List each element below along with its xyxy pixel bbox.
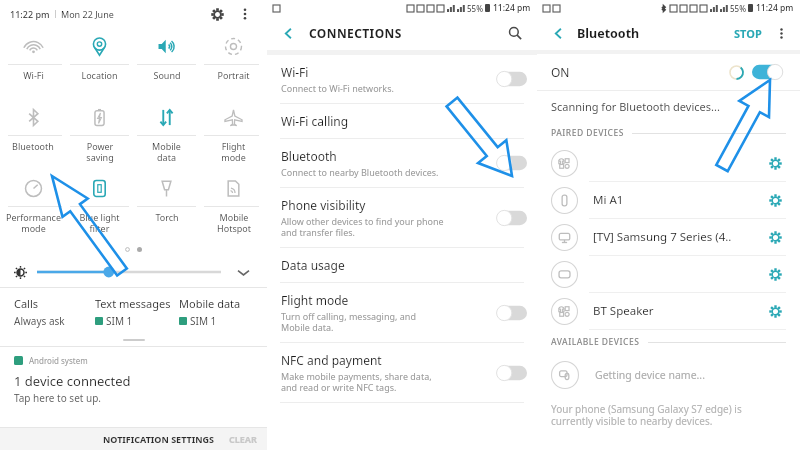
staticText: 1 device connected bbox=[14, 372, 131, 390]
button[interactable]: Wi-Fi toggle bbox=[493, 70, 527, 88]
staticText: Mi A1 bbox=[593, 192, 764, 208]
staticText: Mon 22 June bbox=[61, 8, 114, 20]
staticText: CLEAR bbox=[229, 433, 257, 445]
button[interactable]: Expand bbox=[233, 262, 253, 282]
staticText bbox=[593, 155, 764, 171]
staticText: Always ask bbox=[14, 314, 65, 328]
button[interactable]: Bluetooth bbox=[267, 139, 537, 187]
staticText: Connect to Wi-Fi networks. bbox=[281, 82, 394, 94]
staticText: Wi-Fi calling bbox=[281, 113, 349, 129]
staticText: Mobile data bbox=[152, 140, 181, 163]
button[interactable]: Flight mode bbox=[200, 99, 267, 135]
staticText: Mobile Hotspot bbox=[217, 211, 251, 234]
button[interactable]: Wi-Fi calling bbox=[267, 104, 537, 138]
staticText: Flight mode bbox=[281, 292, 349, 308]
staticText: Wi-Fi bbox=[281, 64, 309, 80]
button[interactable]: More options bbox=[772, 24, 790, 42]
button[interactable]: Portrait bbox=[200, 28, 267, 64]
button[interactable]: Text messages bbox=[95, 296, 179, 328]
staticText: Your phone (Samsung Galaxy S7 edge) is c… bbox=[551, 402, 742, 428]
button[interactable]: Device settings bbox=[764, 300, 786, 322]
button[interactable]: Device settings bbox=[537, 256, 800, 292]
staticText: Bluetooth bbox=[12, 140, 54, 152]
button[interactable]: Performance mode bbox=[0, 170, 66, 206]
button[interactable]: Bluetooth toggle bbox=[752, 63, 786, 81]
button[interactable]: Flight mode toggle bbox=[493, 304, 527, 322]
staticText: Blue light filter bbox=[79, 211, 120, 234]
button[interactable]: Mi A1 bbox=[537, 182, 800, 218]
button[interactable]: Search bbox=[503, 21, 527, 45]
button[interactable]: Back bbox=[547, 22, 569, 44]
button[interactable]: NFC and payment toggle bbox=[493, 364, 527, 382]
staticText: Bluetooth bbox=[281, 148, 337, 164]
staticText: Flight mode bbox=[221, 140, 246, 163]
button[interactable]: Bluetooth toggle bbox=[493, 154, 527, 172]
staticText: BT Speaker bbox=[593, 303, 764, 319]
button[interactable]: Sound bbox=[133, 28, 200, 64]
staticText: Getting device name... bbox=[595, 368, 705, 382]
staticText: ON bbox=[551, 64, 570, 80]
staticText: Scanning for Bluetooth devices... bbox=[551, 99, 720, 114]
staticText: Portrait bbox=[217, 69, 250, 81]
staticText: SIM 1 bbox=[106, 314, 133, 328]
button[interactable]: STOP bbox=[730, 26, 766, 41]
button[interactable]: Blue light filter bbox=[66, 170, 133, 206]
button[interactable]: Wi-Fi bbox=[0, 28, 66, 64]
staticText: Bluetooth bbox=[577, 25, 640, 42]
button[interactable]: Android system bbox=[0, 352, 267, 405]
staticText: SIM 1 bbox=[190, 314, 217, 328]
staticText: AVAILABLE DEVICES bbox=[551, 336, 640, 348]
button[interactable]: Device settings bbox=[537, 145, 800, 181]
button[interactable]: NOTIFICATION SETTINGS bbox=[97, 433, 221, 445]
button[interactable]: Device settings bbox=[764, 152, 786, 174]
staticText: 11:24 pm bbox=[756, 2, 794, 14]
staticText: Data usage bbox=[281, 257, 345, 273]
button[interactable]: Flight mode bbox=[267, 283, 537, 342]
staticText: NOTIFICATION SETTINGS bbox=[103, 433, 215, 445]
button[interactable]: Phone visibility bbox=[267, 188, 537, 247]
staticText: CONNECTIONS bbox=[309, 25, 402, 41]
staticText: Tap here to set up. bbox=[14, 391, 102, 405]
button[interactable]: Back bbox=[277, 22, 299, 44]
button[interactable]: Brightness bbox=[37, 265, 221, 279]
button[interactable]: Mobile Hotspot bbox=[200, 170, 267, 206]
button[interactable]: Device settings bbox=[764, 226, 786, 248]
button[interactable]: Torch bbox=[133, 170, 200, 206]
button[interactable]: BT Speaker bbox=[537, 293, 800, 329]
button[interactable]: Power saving bbox=[66, 99, 133, 135]
button[interactable]: More options bbox=[235, 4, 255, 24]
staticText: Wi-Fi bbox=[23, 69, 44, 81]
staticText: [TV] Samsung 7 Series (4.. bbox=[593, 229, 764, 245]
staticText: Power saving bbox=[86, 140, 114, 163]
button[interactable]: Bluetooth bbox=[0, 99, 66, 135]
button[interactable]: Calls bbox=[14, 296, 95, 328]
button[interactable]: Phone visibility toggle bbox=[493, 209, 527, 227]
button[interactable]: Device settings bbox=[764, 189, 786, 211]
button[interactable]: Settings bbox=[205, 2, 229, 26]
staticText: STOP bbox=[734, 26, 762, 41]
button[interactable]: [TV] Samsung 7 Series (4.. bbox=[537, 219, 800, 255]
staticText: Mobile data bbox=[179, 296, 241, 311]
staticText: Turn off calling, messaging, and Mobile … bbox=[281, 310, 416, 333]
button[interactable]: Mobile data bbox=[179, 296, 259, 328]
button[interactable]: ON bbox=[537, 54, 800, 90]
staticText: Make mobile payments, share data, and re… bbox=[281, 370, 432, 393]
staticText: 11:22 pm bbox=[10, 8, 50, 20]
staticText: Location bbox=[81, 69, 118, 81]
staticText: 11:24 pm bbox=[493, 2, 531, 14]
button[interactable]: NFC and payment bbox=[267, 343, 537, 402]
staticText: Performance mode bbox=[6, 211, 61, 234]
staticText: Phone visibility bbox=[281, 197, 366, 213]
button[interactable]: CLEAR bbox=[221, 433, 267, 445]
button[interactable]: Wi-Fi bbox=[267, 55, 537, 103]
button[interactable]: Device settings bbox=[764, 263, 786, 285]
button[interactable]: Location bbox=[66, 28, 133, 64]
staticText: 55% bbox=[730, 3, 746, 14]
button[interactable]: Getting device name... bbox=[537, 354, 800, 396]
staticText: Text messages bbox=[95, 296, 171, 311]
staticText: Android system bbox=[29, 355, 88, 366]
staticText: Connect to nearby Bluetooth devices. bbox=[281, 166, 439, 178]
button[interactable]: Data usage bbox=[267, 248, 537, 282]
button[interactable]: Mobile data bbox=[133, 99, 200, 135]
